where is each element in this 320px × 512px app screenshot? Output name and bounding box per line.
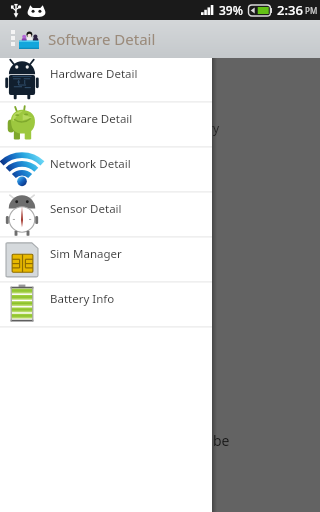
staticText: Sim Manager (50, 246, 122, 262)
button[interactable]: Software Detail (0, 103, 212, 148)
staticText: Battery Info (50, 291, 115, 307)
staticText: Battery (178, 120, 220, 136)
button[interactable]: Hardware Detail (0, 58, 212, 103)
button[interactable]: Sensor Detail (0, 193, 212, 238)
button[interactable]: Open navigation drawer (0, 20, 320, 58)
button[interactable]: Battery Info (0, 283, 212, 328)
staticText: Software Detail (50, 111, 133, 127)
staticText: 2:36 (277, 1, 303, 19)
staticText: Hardware Detail (50, 66, 138, 82)
staticText: PM (305, 5, 318, 16)
staticText: Software Detail (48, 29, 156, 49)
staticText: Network Detail (50, 156, 131, 172)
staticText: be (213, 431, 230, 450)
button[interactable]: Sim Manager (0, 238, 212, 283)
staticText: Sensor Detail (50, 201, 122, 217)
button[interactable]: Network Detail (0, 148, 212, 193)
staticText: 39% (219, 2, 243, 18)
